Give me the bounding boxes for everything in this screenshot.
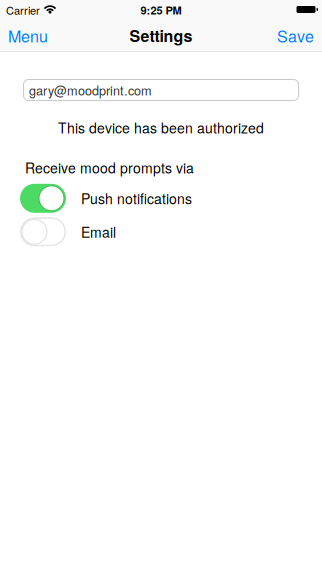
staticText: Menu <box>8 24 48 47</box>
button[interactable]: Push notifications <box>20 184 66 213</box>
staticText: This device has been authorized <box>58 117 264 137</box>
staticText: Receive mood prompts via <box>25 157 194 177</box>
button[interactable]: Save <box>277 24 314 47</box>
textField[interactable]: gary@moodprint.com <box>29 81 299 99</box>
staticText: Carrier <box>6 2 40 18</box>
staticText: Save <box>277 24 314 47</box>
staticText: Push notifications <box>81 188 192 208</box>
button[interactable]: Email <box>20 217 66 246</box>
staticText: 9:25 PM <box>140 2 181 18</box>
staticText: gary@moodprint.com <box>29 81 152 99</box>
button[interactable]: Menu <box>8 24 48 47</box>
staticText: Email <box>81 222 116 242</box>
staticText: Settings <box>129 24 192 47</box>
